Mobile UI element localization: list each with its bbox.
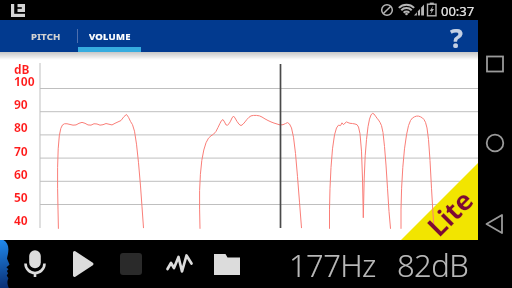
button[interactable]: Recent apps [478,48,512,80]
button[interactable]: Play [73,251,93,277]
button[interactable]: Spectrogram [166,254,194,273]
staticText: 90 [14,96,28,112]
button[interactable]: PITCH [20,20,71,52]
button[interactable]: Home [478,127,512,159]
staticText: ? [450,19,463,51]
button[interactable]: Stop [120,253,142,275]
button[interactable]: VOLUME [78,20,141,52]
staticText: 00:37 [441,2,475,20]
staticText: 177Hz [289,244,376,286]
button[interactable]: Record [24,248,46,280]
staticText: 60 [14,166,28,182]
staticText: Lite [418,181,481,244]
staticText: 40 [14,212,28,228]
staticText: 100 [14,73,35,89]
staticText: 80 [14,119,28,135]
button[interactable]: Help [434,20,478,52]
staticText: dB [14,61,30,77]
staticText: 70 [14,143,28,159]
staticText: PITCH [31,30,61,43]
button[interactable]: Back [478,208,512,240]
staticText: 50 [14,189,28,205]
staticText: 82dB [397,244,469,286]
staticText: VOLUME [89,30,131,43]
button[interactable]: Files [214,253,240,275]
